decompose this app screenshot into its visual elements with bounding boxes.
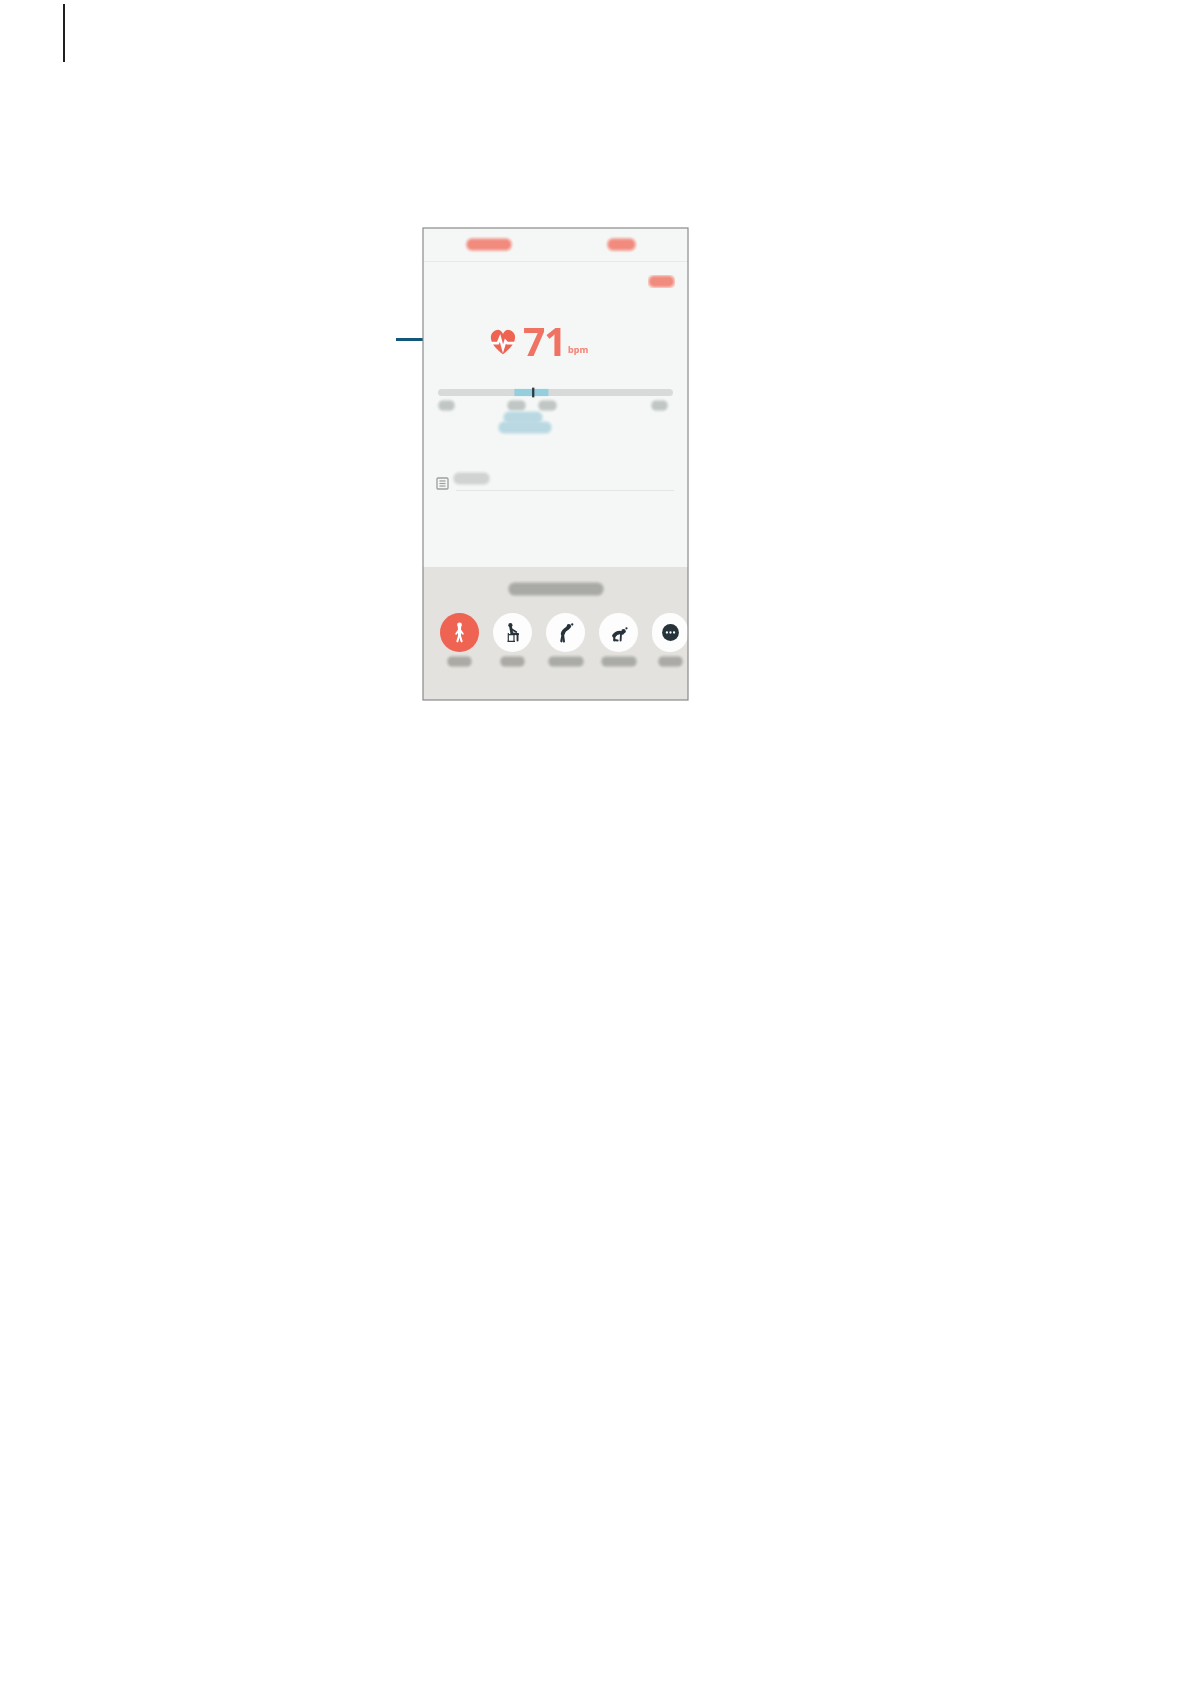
button[interactable] <box>648 275 675 288</box>
button[interactable] <box>437 475 674 491</box>
staticText: 71 <box>523 314 566 367</box>
button[interactable]: Resting status <box>493 613 532 664</box>
button[interactable]: Before sleep status <box>599 613 638 664</box>
button[interactable] <box>555 228 688 261</box>
staticText: bpm <box>568 343 589 355</box>
button[interactable]: After exercise status <box>546 613 585 664</box>
button[interactable]: Heart rate zone <box>438 388 673 397</box>
button[interactable] <box>423 228 555 261</box>
button[interactable]: More statuses <box>652 613 688 664</box>
button[interactable]: General status <box>440 613 479 664</box>
